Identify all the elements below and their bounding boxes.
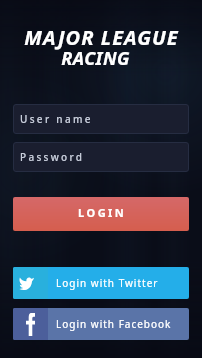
other: Facebook	[13, 308, 48, 340]
staticText: Login with Twitter	[56, 276, 159, 290]
button[interactable]: Twitter	[13, 267, 189, 299]
button[interactable]: Facebook	[13, 308, 189, 340]
staticText: Password	[20, 150, 85, 164]
button[interactable]: LOGIN	[13, 197, 189, 231]
button[interactable]: User name	[13, 104, 189, 134]
other: Twitter	[13, 267, 48, 299]
staticText: User name	[20, 112, 93, 126]
staticText: Login with Facebook	[56, 317, 172, 331]
button[interactable]: Password	[13, 142, 189, 172]
staticText: MAJOR LEAGUE	[24, 24, 179, 51]
staticText: RACING	[61, 46, 130, 71]
staticText: LOGIN	[78, 205, 127, 220]
